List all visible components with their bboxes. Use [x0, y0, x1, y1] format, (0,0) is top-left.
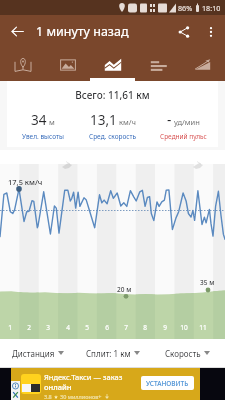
- staticText: 11: [198, 323, 208, 332]
- staticText: 20 м: [117, 285, 132, 294]
- staticText: -: [167, 111, 172, 129]
- staticText: 3: [43, 323, 53, 332]
- button[interactable]: УСТАНОВИТЬ: [141, 376, 194, 390]
- staticText: Сплит: 1 км: [86, 348, 131, 359]
- staticText: Сред. скорость: [89, 132, 137, 141]
- staticText: км/ч: [119, 117, 136, 127]
- button[interactable]: Share: [169, 15, 199, 48]
- button[interactable]: [11, 368, 200, 400]
- button[interactable]: Elevation: [180, 48, 225, 81]
- button[interactable]: Splits: [135, 48, 180, 81]
- staticText: Дистанция: [12, 348, 55, 359]
- button[interactable]: Ad info: [11, 381, 20, 400]
- button[interactable]: More options: [199, 15, 223, 48]
- staticText: 30 миллионов+: [60, 393, 102, 400]
- button[interactable]: Сплит: 1 км: [75, 339, 150, 367]
- staticText: Всего: 11,61 км: [7, 88, 218, 102]
- button[interactable]: Дистанция: [0, 339, 75, 367]
- staticText: 34: [31, 111, 47, 129]
- staticText: 8: [140, 323, 150, 332]
- staticText: 9: [160, 323, 170, 332]
- staticText: 35 м: [200, 278, 215, 287]
- staticText: уд/мин: [174, 117, 200, 127]
- staticText: Средний пульс: [160, 132, 207, 141]
- staticText: 7: [121, 323, 131, 332]
- staticText: 1: [5, 323, 15, 332]
- staticText: 4: [63, 323, 73, 332]
- button[interactable]: 34: [7, 111, 78, 141]
- staticText: 18:10: [202, 3, 221, 13]
- staticText: 13,1: [90, 111, 117, 129]
- staticText: 86%: [178, 3, 193, 13]
- button[interactable]: Map: [0, 48, 45, 81]
- staticText: 10: [179, 323, 189, 332]
- button[interactable]: -: [148, 111, 218, 141]
- staticText: 1 минуту назад: [36, 23, 129, 40]
- button[interactable]: Back: [0, 15, 34, 48]
- staticText: онлайн: [44, 382, 72, 392]
- staticText: 3.8: [44, 393, 52, 400]
- staticText: Яндекс.Такси — заказ: [44, 372, 123, 382]
- staticText: Увел. высоты: [22, 132, 64, 141]
- staticText: м: [49, 117, 55, 127]
- button[interactable]: Charts: [90, 48, 135, 81]
- staticText: 5: [82, 323, 92, 332]
- staticText: Скорость: [165, 348, 201, 359]
- staticText: 17,5 км/ч: [8, 177, 43, 187]
- button[interactable]: Скорость: [150, 339, 225, 367]
- staticText: 2: [24, 323, 34, 332]
- button[interactable]: 13,1: [78, 111, 148, 141]
- button[interactable]: Photos: [45, 48, 90, 81]
- staticText: УСТАНОВИТЬ: [146, 379, 189, 388]
- staticText: 6: [102, 323, 112, 332]
